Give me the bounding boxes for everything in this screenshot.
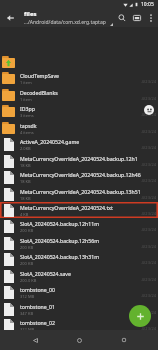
staticText: 4 items (20, 130, 34, 135)
button[interactable]: tombstone_02 (0, 317, 158, 333)
staticText: 2.0KB (20, 146, 31, 151)
button[interactable]: Fast scroll (144, 105, 154, 115)
staticText: MetaCurrencyOverrideA_20240524.backup.12… (20, 155, 141, 162)
staticText: 312 MB (20, 294, 35, 299)
button[interactable]: Parent folder (0, 54, 158, 70)
staticText: MetaCurrencyOverrideA_20240524.backup.13… (20, 188, 141, 195)
staticText: SlotA_20240524.backup.13h31m (20, 253, 100, 260)
button[interactable]: SlotA_20240524.save (0, 268, 158, 284)
staticText: 4 KB (20, 212, 29, 217)
staticText: 18 KB (20, 179, 31, 184)
staticText: tombstone_01 (20, 303, 55, 310)
button[interactable]: MetaCurrencyOverrideA_20240524.backup.12… (0, 169, 158, 185)
staticText: DecodedBlanks (20, 89, 58, 96)
staticText: 322 MB (20, 327, 35, 332)
button[interactable]: More options (144, 9, 157, 27)
button[interactable]: ActiveA_20240524.game (0, 136, 158, 152)
staticText: 200 KB (20, 228, 33, 233)
staticText: 4/23/24 (141, 326, 156, 331)
button[interactable]: Switch view (129, 9, 144, 27)
button[interactable]: Back (25, 330, 45, 350)
staticText: tapsdk (20, 122, 37, 129)
staticText: 4/23/24 (141, 277, 156, 282)
staticText: 200.0 KB (20, 278, 37, 283)
button[interactable]: Back (0, 9, 24, 27)
button[interactable]: MetaCurrencyOverrideA_20240524.backup.13… (0, 186, 158, 202)
staticText: 1 item (20, 97, 32, 102)
staticText: 4/23/24 (141, 260, 156, 265)
button[interactable]: ID3pp (0, 103, 158, 119)
staticText: tombstone_00 (20, 286, 55, 293)
button[interactable]: tombstone_00 (0, 284, 158, 300)
staticText: MetaCurrencyOverrideA_20240524.backup.12… (20, 171, 141, 178)
staticText: SlotA_20240524.save (20, 270, 71, 277)
staticText: 4/23/24 (141, 96, 156, 101)
staticText: ID3pp (20, 105, 35, 112)
staticText: …/Android/data/com.xd.erg.taptap (24, 19, 106, 26)
button[interactable]: Recents (114, 330, 134, 350)
staticText: 4/23/24 (141, 162, 156, 167)
button[interactable]: DecodedBlanks (0, 87, 158, 103)
staticText: 18 KB (20, 163, 31, 168)
button[interactable]: CloudTempSave (0, 70, 158, 86)
staticText: 4/23/24 (141, 310, 156, 315)
button[interactable]: MetaCurrencyOverrideA_20240524.txt (0, 202, 158, 218)
staticText: 4/23/24 (141, 244, 156, 249)
staticText: 18 KB (20, 196, 31, 201)
staticText: 4/23/24 (141, 293, 156, 298)
button[interactable]: tapsdk (0, 120, 158, 136)
staticText: 4/23/24 (141, 178, 156, 183)
staticText: 4/23/24 (141, 211, 156, 216)
button[interactable]: Home (69, 330, 89, 350)
staticText: files (24, 10, 37, 18)
button[interactable]: SlotA_20240524.backup.13h31m (0, 251, 158, 267)
button[interactable]: Add (129, 305, 151, 327)
staticText: 4/23/24 (141, 145, 156, 150)
staticText: SlotA_20240524.backup.12h56m (20, 237, 100, 244)
staticText: 3 items (20, 113, 34, 118)
staticText: 347 KB (20, 311, 33, 316)
staticText: 200 KB (20, 245, 33, 250)
staticText: 200 KB (20, 261, 33, 266)
staticText: ActiveA_20240524.game (20, 138, 80, 145)
staticText: 4/23/24 (141, 129, 156, 134)
staticText: CloudTempSave (20, 72, 59, 79)
staticText: 4/23/24 (141, 112, 156, 117)
staticText: tombstone_02 (20, 319, 55, 326)
button[interactable]: Search (114, 9, 129, 27)
button[interactable]: SlotA_20240524.backup.12h11m (0, 218, 158, 234)
staticText: 4/23/24 (141, 195, 156, 200)
staticText: MetaCurrencyOverrideA_20240524.txt (20, 204, 113, 211)
staticText: 10:05 (141, 1, 154, 8)
staticText: SlotA_20240524.backup.12h11m (20, 220, 100, 227)
staticText: 1 item (20, 80, 32, 85)
staticText: 4/23/24 (141, 79, 156, 84)
button[interactable]: tombstone_01 (0, 301, 158, 317)
button[interactable]: MetaCurrencyOverrideA_20240524.backup.12… (0, 153, 158, 169)
button[interactable]: SlotA_20240524.backup.12h56m (0, 235, 158, 251)
staticText: 4/23/24 (141, 227, 156, 232)
